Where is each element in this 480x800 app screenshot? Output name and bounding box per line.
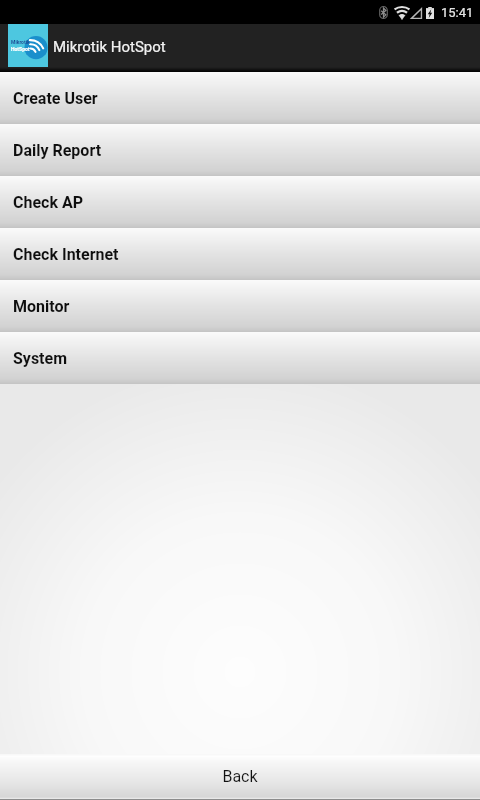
button[interactable]: Check Internet [0,228,480,280]
staticText: System [13,349,68,368]
staticText: Back [222,767,258,786]
button[interactable]: Create User [0,72,480,124]
button[interactable]: Daily Report [0,124,480,176]
staticText: 15:41 [441,5,474,20]
staticText: Check AP [13,193,84,212]
staticText: Check Internet [13,245,119,264]
staticText: Monitor [13,297,70,316]
button[interactable]: Check AP [0,176,480,228]
staticText: Create User [13,89,98,108]
button[interactable]: System [0,332,480,384]
button[interactable]: Monitor [0,280,480,332]
staticText: Mikrotik [11,39,30,45]
button[interactable]: Back [0,754,480,800]
staticText: Mikrotik HotSpot [53,38,166,56]
staticText: Daily Report [13,141,102,160]
staticText: HotSpot [11,46,30,52]
